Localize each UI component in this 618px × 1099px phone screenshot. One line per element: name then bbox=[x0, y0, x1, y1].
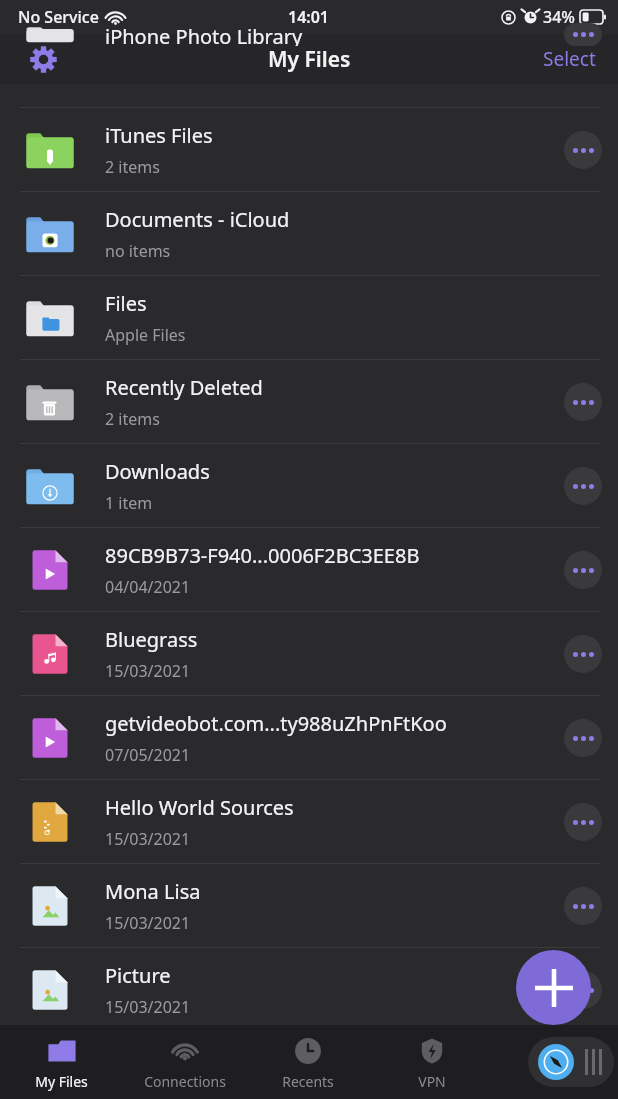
button[interactable]: Picture bbox=[0, 948, 618, 1031]
button[interactable]: Hello World Sources bbox=[0, 780, 618, 863]
button[interactable]: More options bbox=[564, 551, 602, 589]
staticText: Documents - iCloud bbox=[105, 206, 290, 233]
staticText: iTunes Files bbox=[105, 122, 213, 149]
button[interactable]: More options bbox=[564, 635, 602, 673]
staticText: Hello World Sources bbox=[105, 794, 294, 821]
button[interactable]: Bluegrass bbox=[0, 612, 618, 695]
button[interactable]: iTunes Files bbox=[0, 108, 618, 191]
button[interactable]: More options bbox=[564, 971, 602, 1009]
staticText: 2 items bbox=[105, 156, 160, 178]
staticText: 07/05/2021 bbox=[105, 744, 191, 766]
staticText: 15/03/2021 bbox=[105, 912, 191, 934]
button[interactable]: More options bbox=[564, 803, 602, 841]
staticText: iPhone Photo Library bbox=[105, 23, 303, 46]
button[interactable]: Mona Lisa bbox=[0, 864, 618, 947]
staticText: Bluegrass bbox=[105, 626, 198, 653]
button[interactable]: VPN bbox=[370, 1025, 494, 1099]
staticText: getvideobot.com...ty988uZhPnFtKoo bbox=[105, 710, 447, 737]
staticText: Mona Lisa bbox=[105, 878, 201, 905]
button[interactable]: Downloads bbox=[0, 444, 618, 527]
button[interactable]: Connections bbox=[123, 1025, 246, 1099]
button[interactable]: Safari bbox=[528, 1037, 614, 1087]
button[interactable]: More options bbox=[564, 23, 602, 46]
button[interactable]: More options bbox=[564, 383, 602, 421]
button[interactable]: Recents bbox=[246, 1025, 370, 1099]
staticText: Select bbox=[543, 46, 596, 72]
staticText: no items bbox=[105, 240, 171, 262]
staticText: Recently Deleted bbox=[105, 374, 263, 401]
button[interactable]: Documents - iCloud bbox=[0, 192, 618, 275]
button[interactable]: More options bbox=[564, 719, 602, 757]
button[interactable]: My Files bbox=[0, 1025, 123, 1099]
staticText: Picture bbox=[105, 962, 171, 989]
button[interactable]: More options bbox=[564, 131, 602, 169]
staticText: 04/04/2021 bbox=[105, 576, 191, 598]
staticText: 15/03/2021 bbox=[105, 828, 191, 850]
button[interactable]: Files bbox=[0, 276, 618, 359]
staticText: Recents bbox=[282, 1072, 334, 1091]
button[interactable]: More options bbox=[564, 467, 602, 505]
staticText: My Files bbox=[35, 1072, 88, 1091]
staticText: 89CB9B73-F940...0006F2BC3EE8B bbox=[105, 542, 420, 569]
staticText: Connections bbox=[144, 1072, 226, 1091]
button[interactable]: Add bbox=[516, 950, 591, 1025]
staticText: No Service bbox=[18, 6, 99, 28]
staticText: 34% bbox=[543, 6, 575, 28]
staticText: My Files bbox=[268, 45, 351, 74]
staticText: 15/03/2021 bbox=[105, 660, 191, 682]
staticText: 14:01 bbox=[288, 6, 330, 28]
staticText: Downloads bbox=[105, 458, 210, 485]
staticText: 1 item bbox=[105, 492, 153, 514]
staticText: Files bbox=[105, 290, 147, 317]
button[interactable]: Select bbox=[537, 40, 602, 78]
button[interactable]: Settings bbox=[22, 38, 64, 80]
button[interactable]: More options bbox=[564, 887, 602, 925]
staticText: 2 items bbox=[105, 408, 160, 430]
staticText: VPN bbox=[418, 1072, 446, 1091]
staticText: 15/03/2021 bbox=[105, 996, 191, 1018]
staticText: Apple Files bbox=[105, 324, 186, 346]
button[interactable]: Recently Deleted bbox=[0, 360, 618, 443]
button[interactable]: 89CB9B73-F940...0006F2BC3EE8B bbox=[0, 528, 618, 611]
button[interactable]: getvideobot.com...ty988uZhPnFtKoo bbox=[0, 696, 618, 779]
